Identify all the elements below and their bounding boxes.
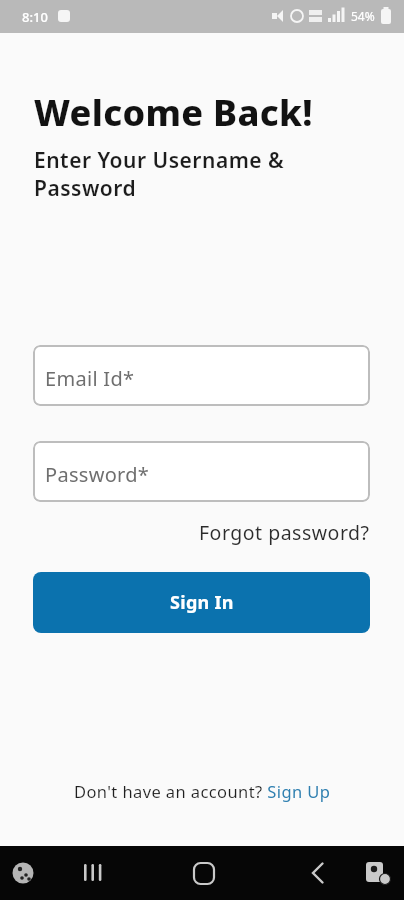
staticText: Enter Your Username & Password [34,146,285,202]
button[interactable]: Password* [33,441,370,502]
staticText: 54% [351,8,375,24]
staticText: Forgot password? [199,519,370,546]
staticText: Email Id* [45,365,135,392]
staticText: Password* [45,461,150,488]
staticText: Welcome Back! [34,88,313,137]
button[interactable] [72,856,108,892]
button[interactable] [186,856,222,892]
button[interactable]: Email Id* [33,345,370,406]
staticText: Don't have an account? Sign Up [74,780,331,802]
button[interactable]: Sign In [33,572,370,633]
button[interactable] [297,856,333,892]
button[interactable]: Don't have an account? Sign Up [74,780,331,802]
staticText: 8:10 [22,8,48,26]
staticText: Sign In [170,590,234,615]
button[interactable]: Forgot password? [199,519,370,546]
